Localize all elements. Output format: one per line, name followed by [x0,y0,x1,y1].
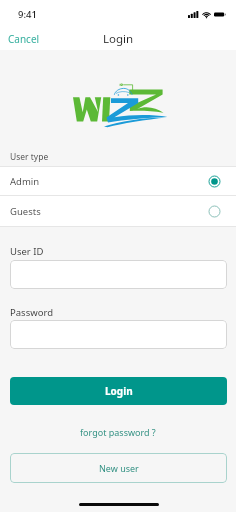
button[interactable]: Login [10,377,227,405]
button[interactable] [10,320,227,349]
staticText: User ID [10,245,44,258]
staticText: Login [105,384,133,398]
button[interactable]: New user [10,453,227,483]
staticText: Password [10,306,53,319]
button[interactable]: Admin [0,167,236,195]
staticText: 9:41 [18,8,37,21]
button[interactable]: forgot password ? [76,422,160,442]
button[interactable]: Guests [0,196,236,226]
staticText: New user [99,462,139,474]
staticText: User type [10,151,49,163]
button[interactable] [10,260,227,289]
staticText: Guests [10,205,41,218]
staticText: Admin [10,175,40,188]
staticText: Login [103,31,134,47]
button[interactable]: Cancel [0,29,46,49]
